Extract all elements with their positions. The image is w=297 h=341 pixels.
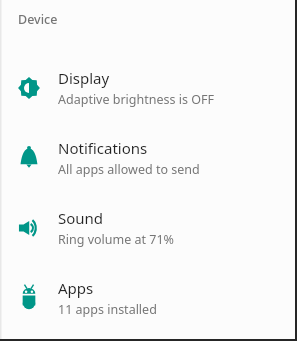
staticText: All apps allowed to send xyxy=(58,161,200,178)
staticText: 11 apps installed xyxy=(58,301,157,318)
button[interactable]: Apps settings xyxy=(0,263,297,333)
other: Apps settings xyxy=(0,263,58,333)
button[interactable]: Display settings xyxy=(0,53,297,123)
staticText: Device xyxy=(18,11,58,28)
staticText: Display xyxy=(58,68,110,88)
other: Notification settings xyxy=(0,123,58,193)
staticText: Adaptive brightness is OFF xyxy=(58,91,214,108)
button[interactable]: Notification settings xyxy=(0,123,297,193)
staticText: Notifications xyxy=(58,138,148,158)
other: Sound settings xyxy=(0,193,58,263)
staticText: Apps xyxy=(58,278,94,298)
staticText: Sound xyxy=(58,208,104,228)
other: Display settings xyxy=(0,53,58,123)
staticText: Ring volume at 71% xyxy=(58,231,174,248)
button[interactable]: Sound settings xyxy=(0,193,297,263)
